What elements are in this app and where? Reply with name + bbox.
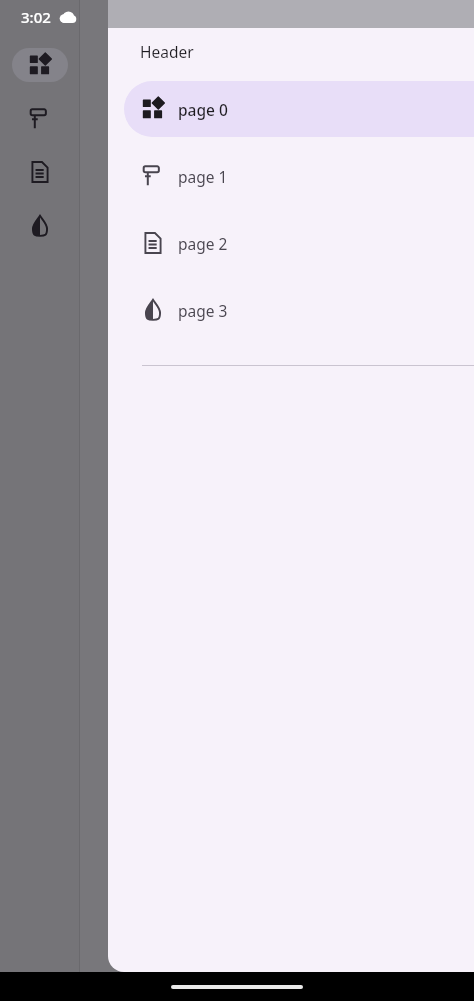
staticText: page 0 (178, 99, 228, 120)
button[interactable]: page 1 (124, 148, 474, 204)
button[interactable]: Documents (12, 155, 68, 189)
button[interactable]: page 3 (124, 282, 474, 338)
button[interactable]: page 0 (124, 81, 474, 137)
staticText: page 2 (178, 233, 228, 254)
staticText: 3:02 (21, 7, 51, 27)
staticText: Header (140, 41, 194, 62)
button[interactable]: Dashboard (12, 48, 68, 82)
button[interactable]: Opacity (12, 209, 68, 243)
button[interactable]: page 2 (124, 215, 474, 271)
button[interactable]: Theme (12, 102, 68, 136)
staticText: page 1 (178, 166, 228, 187)
staticText: page 3 (178, 300, 228, 321)
